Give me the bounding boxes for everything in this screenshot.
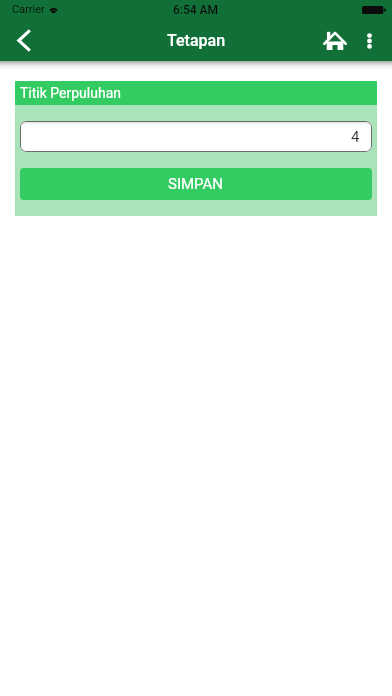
button[interactable]: 4: [20, 121, 372, 152]
staticText: Carrier: [12, 3, 45, 16]
staticText: SIMPAN: [168, 175, 224, 193]
button[interactable]: Home: [314, 20, 356, 61]
staticText: Tetapan: [167, 31, 226, 50]
button[interactable]: More options: [352, 20, 386, 61]
staticText: Titik Perpuluhan: [20, 85, 121, 101]
staticText: 6:54 AM: [173, 3, 219, 17]
button[interactable]: Back: [0, 20, 44, 61]
button[interactable]: SIMPAN: [20, 168, 372, 200]
staticText: 4: [351, 128, 360, 146]
